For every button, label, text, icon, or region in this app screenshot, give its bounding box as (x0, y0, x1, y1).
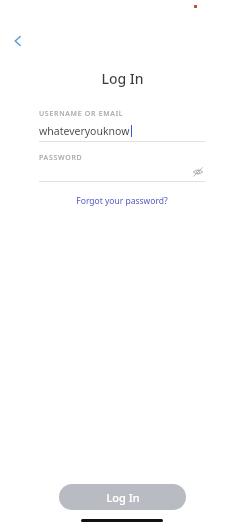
staticText: Forgot your password? (76, 195, 168, 207)
staticText: PASSWORD (39, 153, 83, 163)
staticText: USERNAME OR EMAIL (39, 109, 124, 119)
staticText: Log In (101, 69, 144, 88)
staticText: Log In (106, 490, 140, 505)
button[interactable]: Forgot your password? (70, 193, 174, 209)
button[interactable]: Back (4, 27, 32, 55)
button[interactable]: Show password (191, 165, 205, 179)
button[interactable]: whateveryouknow (39, 124, 205, 138)
button[interactable]: Log In (59, 484, 186, 510)
staticText: whateveryouknow (39, 124, 130, 138)
